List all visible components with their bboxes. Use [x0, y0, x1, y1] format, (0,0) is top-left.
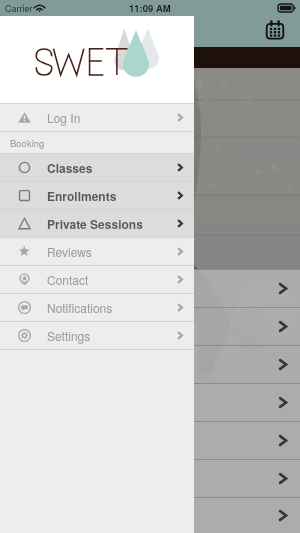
staticText: Carrier [5, 2, 33, 15]
staticText: Contact [47, 271, 89, 288]
button[interactable]: Contact [0, 265, 194, 293]
button[interactable] [0, 345, 300, 383]
staticText: 11:09 AM [129, 1, 171, 15]
staticText: Enrollments [47, 187, 117, 204]
button[interactable] [0, 383, 300, 421]
button[interactable]: Calendar [266, 21, 284, 39]
button[interactable] [0, 459, 300, 497]
staticText: Notifications [47, 299, 113, 316]
button[interactable] [0, 307, 300, 345]
staticText: Settings [47, 327, 91, 344]
button[interactable]: Classes [0, 153, 194, 181]
staticText: Log In [47, 109, 81, 126]
button[interactable]: Enrollments [0, 181, 194, 209]
staticText: Classes [47, 159, 93, 176]
staticText: Booking [10, 136, 45, 150]
button[interactable]: Private Sessions [0, 209, 194, 237]
staticText: Reviews [47, 243, 92, 260]
button[interactable]: Notifications [0, 293, 194, 321]
staticText: Private Sessions [47, 215, 143, 232]
button[interactable]: Reviews [0, 237, 194, 265]
button[interactable]: Settings [0, 321, 194, 349]
button[interactable]: Log In [0, 103, 194, 131]
button[interactable] [0, 497, 300, 533]
button[interactable] [0, 269, 300, 307]
button[interactable] [0, 421, 300, 459]
